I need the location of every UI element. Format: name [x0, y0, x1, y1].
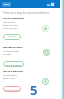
staticText: Choose a way to connect with us [3, 11, 49, 15]
staticText: 5 [30, 81, 38, 99]
staticText: Get a callback [4, 88, 21, 91]
button[interactable]: Start messaging [3, 61, 24, 67]
staticText: Connect here with an agent. [3, 50, 21, 56]
staticText: The wait time is about 5 mins. [3, 74, 21, 80]
button[interactable]: Post a question [3, 34, 21, 40]
staticText: ‹ Back [3, 3, 10, 6]
staticText: Post a question [3, 34, 21, 40]
button[interactable]: Get a callback [3, 86, 21, 92]
button[interactable]: Minimize [46, 2, 51, 7]
button[interactable]: Close [50, 2, 55, 7]
staticText: Message an agent [3, 46, 23, 49]
staticText: Ask the community [3, 17, 25, 20]
button[interactable]: ‹ Back [2, 2, 11, 7]
staticText: Get help from expert users and other cus… [3, 21, 21, 30]
staticText: Start messaging [4, 63, 24, 66]
staticText: Talk to a specialist [3, 70, 23, 73]
